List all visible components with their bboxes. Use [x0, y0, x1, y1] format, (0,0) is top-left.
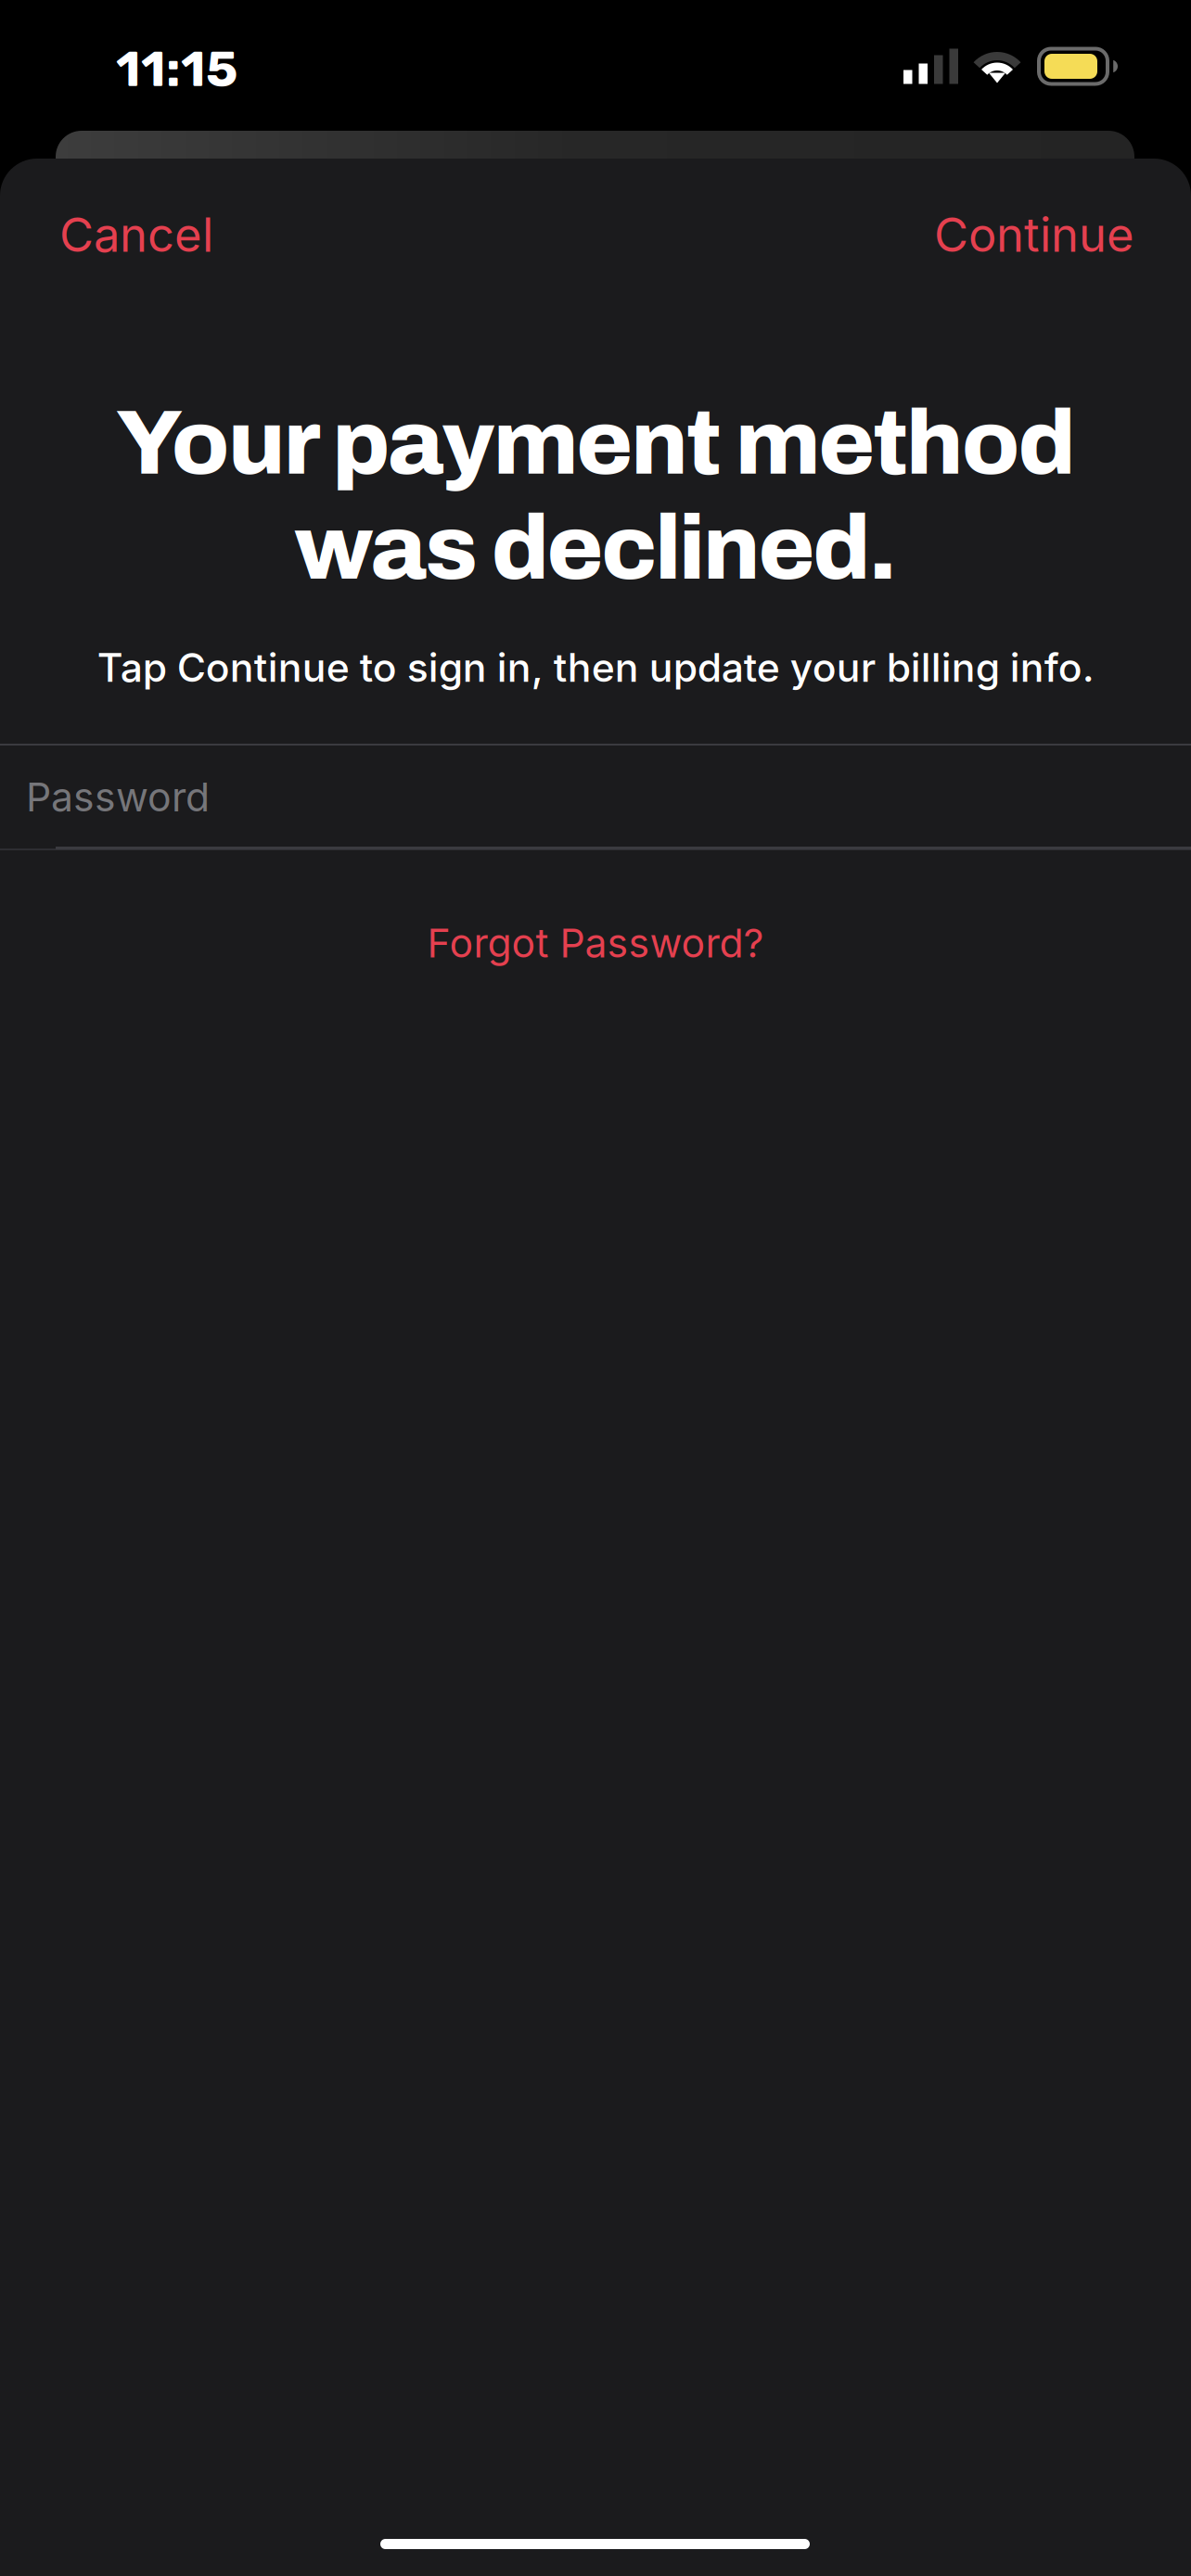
staticText: Your payment method was declined.: [116, 393, 1075, 598]
button[interactable]: Forgot Password?: [0, 899, 1191, 988]
staticText: 11:15: [116, 40, 237, 98]
button[interactable]: Cancel: [0, 191, 263, 278]
staticText: Cancel: [59, 206, 213, 263]
staticText: Password: [26, 773, 210, 821]
staticText: Continue: [934, 206, 1134, 263]
staticText: Forgot Password?: [427, 919, 764, 967]
button[interactable]: Password: [0, 746, 1191, 848]
button[interactable]: Continue: [903, 191, 1191, 278]
staticText: Tap Continue to sign in, then update you…: [97, 644, 1094, 691]
